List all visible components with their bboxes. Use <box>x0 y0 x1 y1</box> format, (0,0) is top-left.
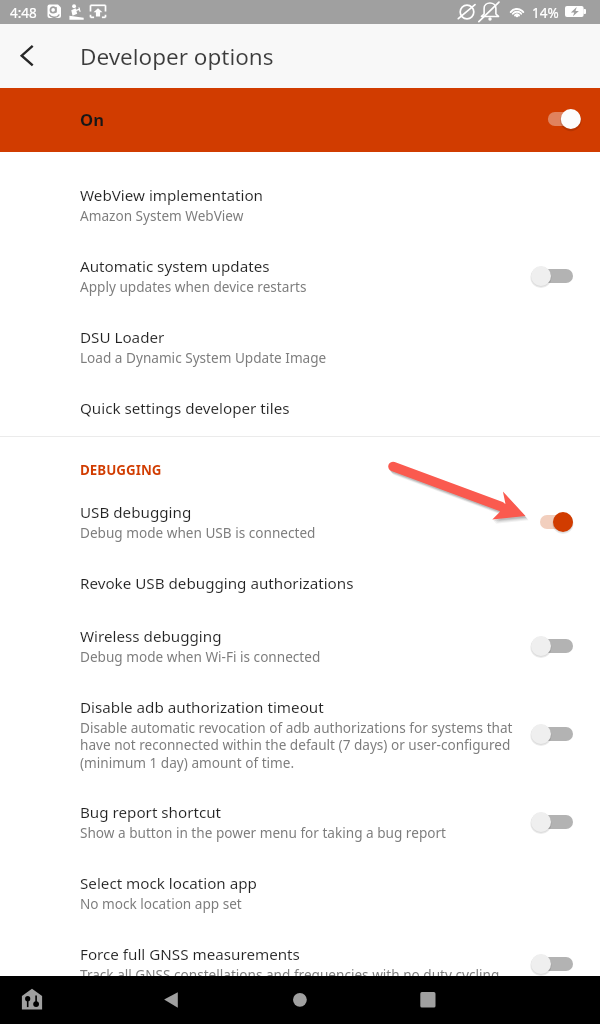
staticText: 4:48 <box>10 4 37 22</box>
button[interactable]: Switch off <box>531 809 573 835</box>
button[interactable]: Switch off <box>531 721 573 747</box>
staticText: No mock location app set <box>80 894 242 913</box>
staticText: Disable automatic revocation of adb auth… <box>80 718 522 772</box>
staticText: 14% <box>532 4 559 22</box>
button[interactable]: Automatic system updates <box>0 240 600 309</box>
button[interactable]: DSU Loader <box>0 311 600 380</box>
button[interactable]: Developer options on <box>539 106 581 132</box>
button[interactable]: Revoke USB debugging authorizations <box>0 557 600 608</box>
staticText: Automatic system updates <box>80 256 270 277</box>
staticText: Show a button in the power menu for taki… <box>80 823 446 842</box>
staticText: USB debugging <box>80 502 192 523</box>
button[interactable]: Recent apps <box>416 988 440 1012</box>
button[interactable]: Switch off <box>531 951 573 977</box>
staticText: DSU Loader <box>80 327 165 348</box>
button[interactable]: Wireless debugging <box>0 610 600 679</box>
staticText: Wireless debugging <box>80 626 222 647</box>
button[interactable]: Switch off <box>531 633 573 659</box>
button[interactable]: Quick settings developer tiles <box>0 382 600 433</box>
button[interactable]: Back <box>160 988 182 1012</box>
staticText: Apply updates when device restarts <box>80 277 307 296</box>
button[interactable]: Force full GNSS measurements <box>0 928 600 997</box>
staticText: Track all GNSS constellations and freque… <box>80 965 500 984</box>
button[interactable]: WebView implementation <box>0 169 600 238</box>
button[interactable]: USB debugging <box>0 486 600 555</box>
staticText: Debug mode when USB is connected <box>80 523 316 542</box>
button[interactable]: Disable adb authorization timeout <box>0 681 600 785</box>
button[interactable]: Home <box>288 988 312 1012</box>
staticText: Debug mode when Wi-Fi is connected <box>80 647 321 666</box>
staticText: Revoke USB debugging authorizations <box>80 573 354 594</box>
staticText: On <box>80 108 104 131</box>
staticText: Quick settings developer tiles <box>80 398 290 419</box>
staticText: WebView implementation <box>80 185 263 206</box>
staticText: Load a Dynamic System Update Image <box>80 348 327 367</box>
button[interactable]: Switch on <box>531 509 573 535</box>
staticText: Force full GNSS measurements <box>80 944 300 965</box>
button[interactable]: Switch input method <box>18 984 46 1014</box>
staticText: Select mock location app <box>80 873 257 894</box>
button[interactable]: Navigate up <box>6 34 50 78</box>
button[interactable]: Bug report shortcut <box>0 786 600 855</box>
staticText: DEBUGGING <box>80 461 162 479</box>
staticText: Disable adb authorization timeout <box>80 697 324 718</box>
button[interactable]: Select mock location app <box>0 857 600 926</box>
button[interactable]: Switch off <box>531 263 573 289</box>
staticText: Bug report shortcut <box>80 802 222 823</box>
staticText: Amazon System WebView <box>80 206 244 225</box>
staticText: Developer options <box>80 41 274 72</box>
button[interactable]: On <box>0 88 600 152</box>
